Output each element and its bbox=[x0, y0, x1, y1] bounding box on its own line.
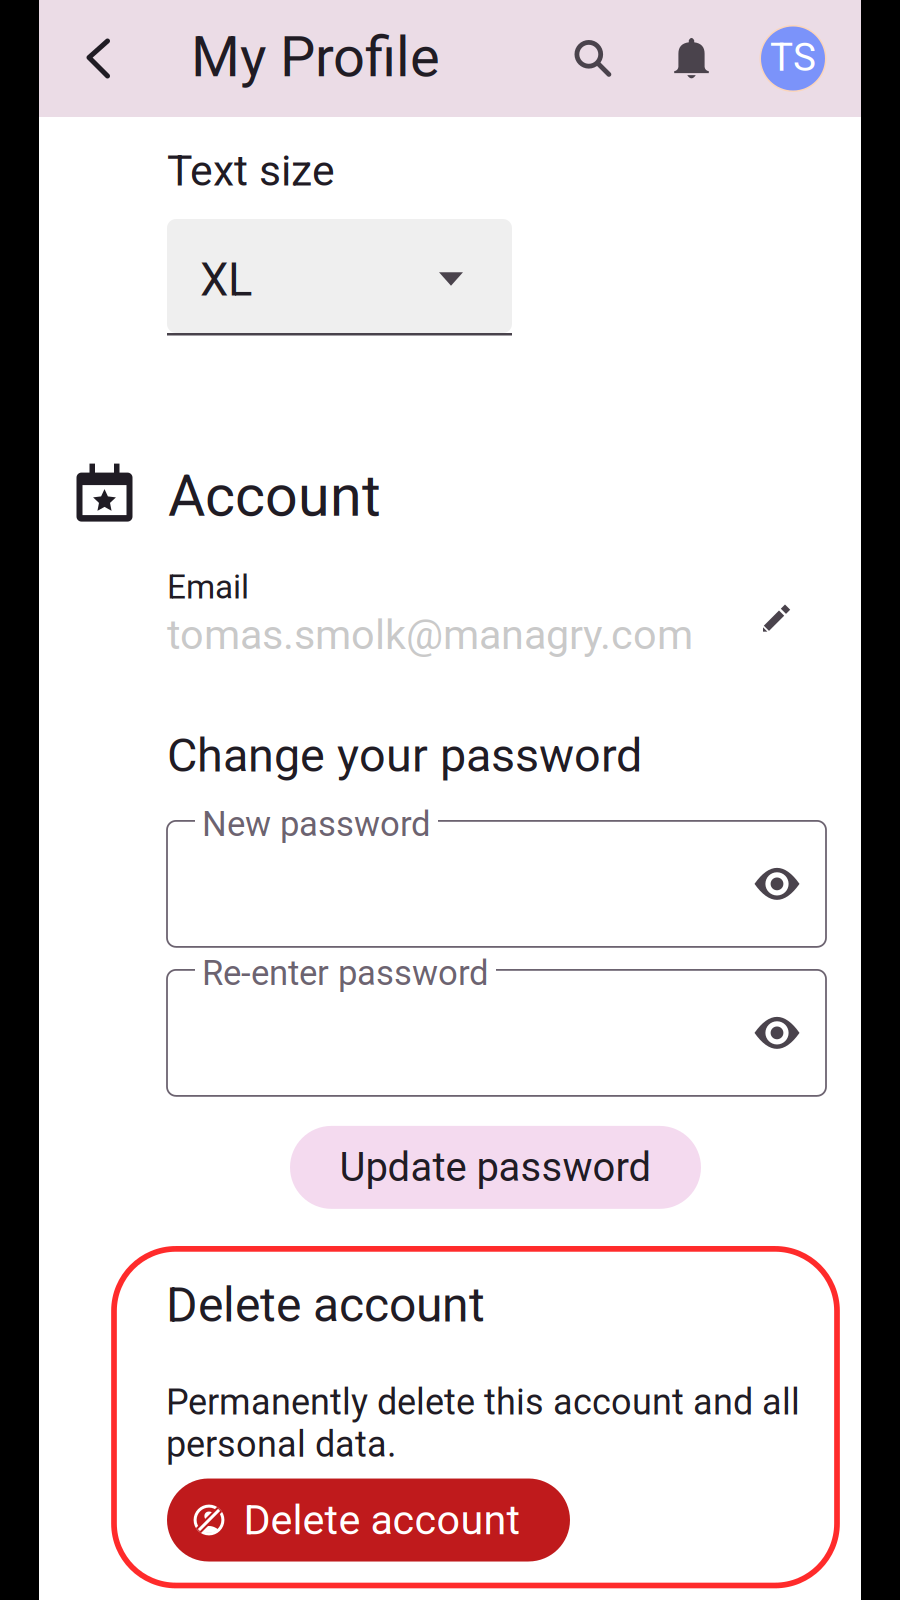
button[interactable]: Edit email bbox=[763, 568, 861, 632]
staticText: TS bbox=[770, 35, 816, 80]
button[interactable]: Back bbox=[39, 0, 157, 117]
button[interactable]: Update password bbox=[290, 1126, 701, 1209]
staticText: tomas.smolk@managry.com bbox=[167, 611, 693, 659]
button[interactable]: Notifications bbox=[658, 0, 725, 117]
staticText: XL bbox=[200, 253, 252, 306]
button[interactable]: Show password bbox=[754, 860, 826, 907]
staticText: Email bbox=[167, 568, 249, 607]
button[interactable]: Show password bbox=[754, 1009, 826, 1056]
staticText: Re-enter password bbox=[202, 953, 489, 993]
staticText: Delete account bbox=[166, 1277, 485, 1333]
staticText: Text size bbox=[167, 146, 335, 196]
button[interactable]: Account profile bbox=[725, 0, 861, 117]
staticText: Update password bbox=[339, 1144, 651, 1191]
staticText: My Profile bbox=[191, 24, 440, 90]
staticText: Delete account bbox=[243, 1496, 520, 1544]
staticText: Account bbox=[168, 462, 381, 530]
staticText: Permanently delete this account and all … bbox=[166, 1381, 800, 1465]
staticText: Change your password bbox=[167, 728, 642, 783]
button[interactable]: Search bbox=[528, 0, 658, 117]
button[interactable]: XL bbox=[167, 219, 512, 335]
staticText: New password bbox=[202, 804, 431, 844]
button[interactable]: Delete account bbox=[167, 1478, 570, 1561]
